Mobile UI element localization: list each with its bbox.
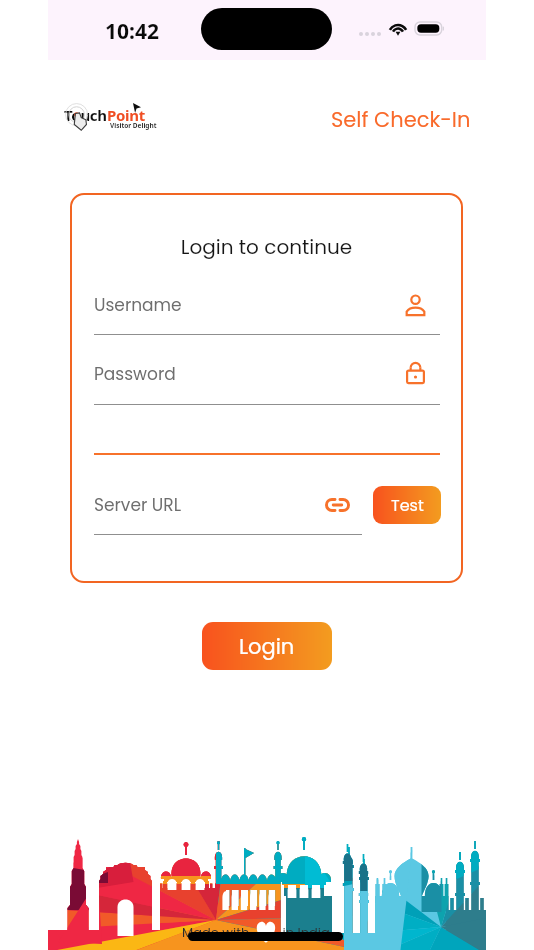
staticText: Server URL bbox=[94, 493, 181, 517]
button[interactable]: Test bbox=[373, 486, 441, 524]
button[interactable]: Username bbox=[405, 294, 426, 316]
staticText: Touch bbox=[64, 105, 107, 125]
staticText: Username bbox=[94, 293, 182, 317]
staticText: Test bbox=[391, 494, 424, 516]
button[interactable]: Login bbox=[202, 622, 332, 670]
staticText: Password bbox=[94, 362, 176, 386]
staticText: Point bbox=[107, 105, 145, 125]
staticText: in India bbox=[279, 923, 330, 941]
button[interactable]: Server link bbox=[325, 498, 350, 512]
staticText: 10:42 bbox=[105, 17, 159, 46]
other: Server link bbox=[325, 498, 350, 512]
staticText: Made with bbox=[182, 923, 253, 941]
staticText: Visitor Delight bbox=[110, 121, 157, 130]
staticText: Login bbox=[239, 632, 295, 661]
other: Username bbox=[405, 294, 426, 316]
staticText: Self Check-In bbox=[331, 105, 471, 134]
other: Password bbox=[405, 361, 426, 385]
button[interactable]: Password bbox=[405, 361, 426, 385]
staticText: Login to continue bbox=[70, 233, 463, 261]
